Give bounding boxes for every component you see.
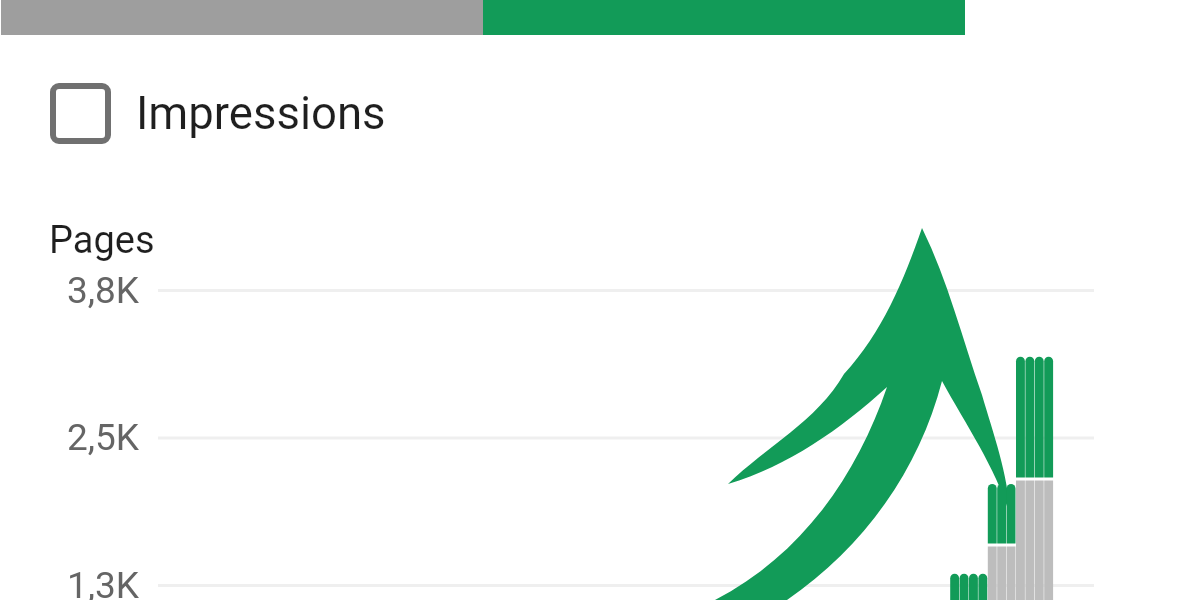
staticText: Impressions: [136, 87, 386, 140]
button[interactable]: Toggle Impressions series: [40, 73, 440, 153]
staticText: 1,3K: [67, 564, 140, 600]
other: Loading progress 50 percent: [1, 0, 965, 35]
staticText: 2,5K: [67, 416, 140, 459]
staticText: Pages: [49, 218, 155, 263]
other: Toggle Impressions series: [40, 73, 120, 153]
staticText: 3,8K: [67, 269, 140, 312]
